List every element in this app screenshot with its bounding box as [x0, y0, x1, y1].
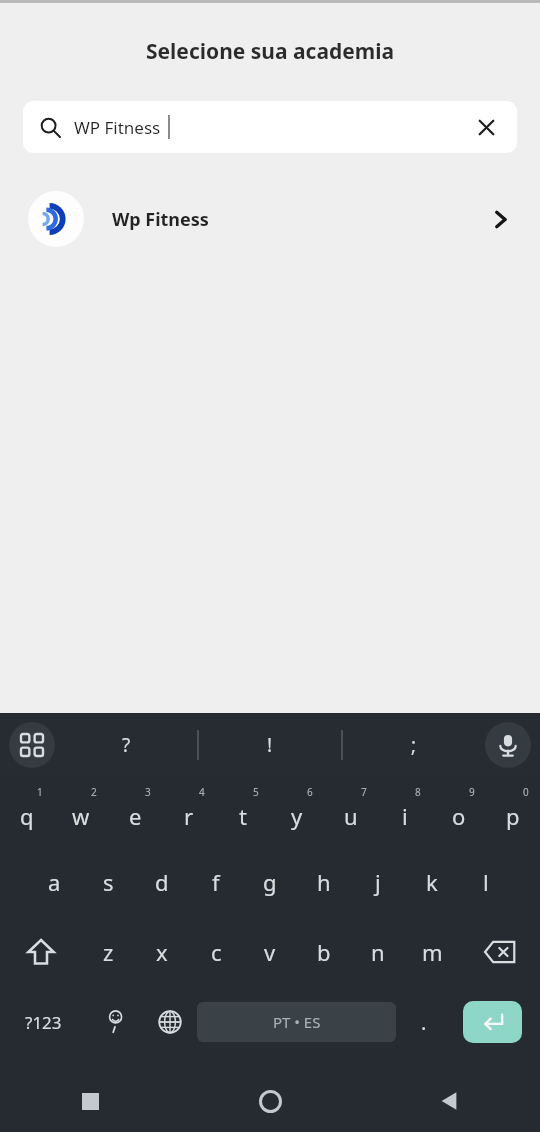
staticText: 4: [199, 785, 205, 799]
button[interactable]: s: [81, 847, 135, 917]
staticText: q: [20, 801, 34, 831]
staticText: l: [483, 867, 489, 897]
button[interactable]: !: [199, 713, 341, 777]
button[interactable]: r: [162, 777, 216, 847]
staticText: p: [506, 801, 520, 831]
button[interactable]: u: [324, 777, 378, 847]
button[interactable]: m: [405, 917, 459, 987]
staticText: g: [263, 867, 277, 897]
staticText: 0: [523, 785, 529, 799]
button[interactable]: Recent apps: [0, 1070, 180, 1132]
button[interactable]: h: [297, 847, 351, 917]
button[interactable]: .: [396, 987, 451, 1057]
button[interactable]: g: [243, 847, 297, 917]
staticText: a: [48, 867, 61, 897]
staticText: PT • ES: [273, 1012, 321, 1032]
staticText: Selecione sua academia: [146, 37, 395, 66]
staticText: k: [426, 867, 438, 897]
button[interactable]: n: [351, 917, 405, 987]
button[interactable]: Voice input: [485, 722, 531, 768]
button[interactable]: Shift: [0, 917, 81, 987]
button[interactable]: v: [243, 917, 297, 987]
button[interactable]: q: [0, 777, 54, 847]
button[interactable]: Wp Fitness: [0, 181, 540, 257]
button[interactable]: y: [270, 777, 324, 847]
button[interactable]: ?123: [0, 987, 87, 1057]
button[interactable]: Backspace: [459, 917, 540, 987]
staticText: c: [211, 937, 222, 967]
button[interactable]: Keyboard options: [9, 722, 55, 768]
button[interactable]: o: [432, 777, 486, 847]
staticText: 3: [145, 785, 151, 799]
button[interactable]: PT • ES: [197, 987, 396, 1057]
staticText: n: [371, 937, 385, 967]
staticText: e: [129, 801, 142, 831]
staticText: Wp Fitness: [112, 207, 209, 232]
staticText: 2: [91, 785, 97, 799]
button[interactable]: x: [135, 917, 189, 987]
staticText: d: [155, 867, 169, 897]
staticText: 8: [415, 785, 421, 799]
button[interactable]: i: [378, 777, 432, 847]
button[interactable]: e: [108, 777, 162, 847]
staticText: z: [103, 937, 114, 967]
button[interactable]: l: [459, 847, 513, 917]
button[interactable]: Back: [360, 1070, 540, 1132]
button[interactable]: Clear search: [469, 110, 503, 144]
staticText: 5: [253, 785, 259, 799]
button[interactable]: f: [189, 847, 243, 917]
button[interactable]: c: [189, 917, 243, 987]
staticText: r: [184, 801, 194, 831]
staticText: h: [317, 867, 331, 897]
staticText: i: [402, 801, 408, 831]
staticText: ;: [411, 732, 417, 758]
button[interactable]: z: [81, 917, 135, 987]
staticText: j: [375, 867, 381, 897]
button[interactable]: Enter: [451, 987, 534, 1057]
staticText: ?123: [25, 1011, 62, 1034]
button[interactable]: k: [405, 847, 459, 917]
button[interactable]: Emoji: [87, 987, 142, 1057]
button[interactable]: ?: [55, 713, 197, 777]
button[interactable]: j: [351, 847, 405, 917]
button[interactable]: ;: [343, 713, 485, 777]
button[interactable]: p: [486, 777, 540, 847]
button[interactable]: Change language: [142, 987, 197, 1057]
staticText: v: [264, 937, 276, 967]
staticText: 6: [307, 785, 313, 799]
button[interactable]: w: [54, 777, 108, 847]
button[interactable]: b: [297, 917, 351, 987]
staticText: 9: [469, 785, 475, 799]
button[interactable]: Home: [180, 1070, 360, 1132]
button[interactable]: a: [27, 847, 81, 917]
staticText: x: [156, 937, 168, 967]
button[interactable]: t: [216, 777, 270, 847]
button[interactable]: WP Fitness: [23, 101, 517, 153]
staticText: ?: [122, 732, 131, 758]
staticText: y: [291, 801, 303, 831]
staticText: WP Fitness: [74, 116, 161, 139]
staticText: .: [421, 1009, 427, 1036]
staticText: 7: [361, 785, 367, 799]
button[interactable]: d: [135, 847, 189, 917]
staticText: o: [452, 801, 466, 831]
staticText: m: [422, 937, 443, 967]
staticText: !: [267, 732, 273, 758]
staticText: f: [212, 867, 220, 897]
staticText: s: [103, 867, 114, 897]
staticText: 1: [37, 785, 43, 799]
staticText: t: [239, 801, 247, 831]
staticText: w: [72, 801, 90, 831]
staticText: b: [317, 937, 331, 967]
staticText: u: [344, 801, 358, 831]
